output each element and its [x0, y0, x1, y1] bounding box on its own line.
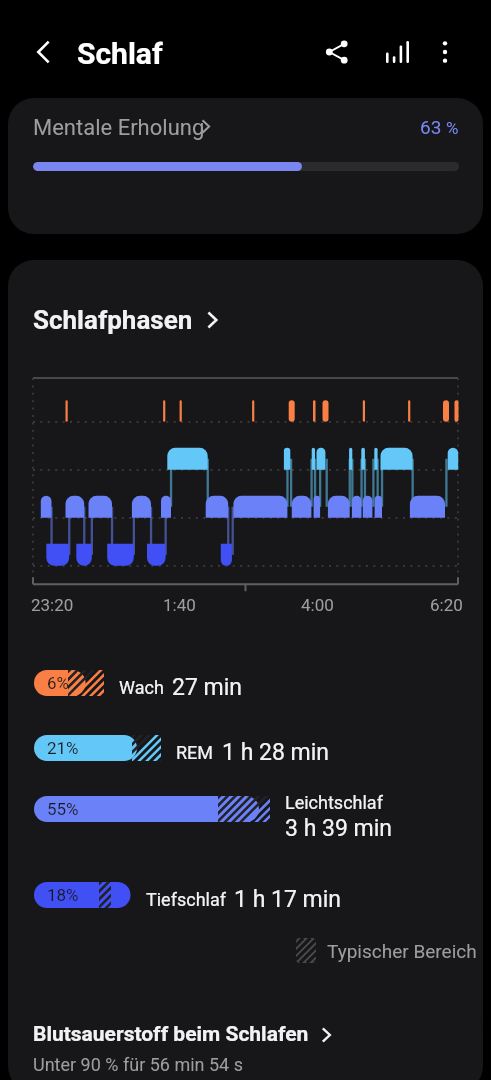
- button[interactable]: Statistik: [373, 28, 421, 76]
- staticText: 1 h 28 min: [222, 739, 330, 766]
- staticText: Wach: [119, 677, 164, 698]
- button[interactable]: 21%: [34, 735, 161, 761]
- button[interactable]: Mentale Erholung: [8, 98, 483, 234]
- staticText: Tiefschlaf: [146, 889, 226, 910]
- button[interactable]: Zurück: [20, 28, 68, 76]
- button[interactable]: 6%: [34, 670, 104, 696]
- staticText: 63: [420, 116, 442, 138]
- staticText: 21%: [47, 738, 79, 758]
- staticText: 55%: [47, 799, 79, 819]
- staticText: 4:00: [301, 595, 334, 615]
- staticText: 1:40: [163, 595, 196, 615]
- staticText: 23:20: [31, 595, 74, 615]
- staticText: 27 min: [172, 674, 243, 701]
- staticText: 6:20: [430, 595, 463, 615]
- staticText: Schlafphasen: [33, 305, 193, 335]
- staticText: 3 h 39 min: [285, 815, 393, 842]
- staticText: Mentale Erholung: [33, 115, 205, 141]
- button[interactable]: 55%: [34, 796, 270, 822]
- staticText: Blutsauerstoff beim Schlafen: [33, 1022, 309, 1047]
- button[interactable]: 18%: [34, 882, 131, 908]
- staticText: 1 h 17 min: [234, 886, 342, 913]
- button[interactable]: Blutsauerstoff beim Schlafen: [33, 1022, 334, 1047]
- button[interactable]: Weitere Optionen: [421, 28, 469, 76]
- staticText: Typischer Bereich: [327, 940, 477, 962]
- staticText: Leichtschlaf: [285, 792, 383, 813]
- button[interactable]: Schlafphasen: [33, 305, 221, 335]
- staticText: Unter 90 % für 56 min 54 s: [33, 1054, 243, 1075]
- staticText: 18%: [47, 885, 79, 905]
- staticText: Schlaf: [77, 36, 163, 71]
- staticText: 6%: [47, 673, 70, 693]
- button[interactable]: Teilen: [313, 28, 361, 76]
- staticText: %: [446, 118, 459, 138]
- staticText: REM: [176, 742, 214, 763]
